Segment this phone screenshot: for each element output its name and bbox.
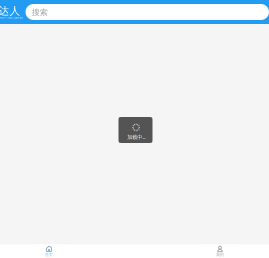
button[interactable]: 首页 [29, 244, 69, 258]
staticText: 加载中... [127, 133, 145, 141]
staticText: 搜索 [32, 7, 48, 17]
staticText: 我的 [216, 252, 224, 257]
button[interactable]: 我的 [200, 244, 240, 258]
staticText: 首页 [45, 252, 53, 257]
button[interactable]: 搜索 [25, 4, 269, 20]
staticText: 达人 [0, 4, 20, 17]
staticText: SHOPPING DAREN [0, 16, 22, 19]
